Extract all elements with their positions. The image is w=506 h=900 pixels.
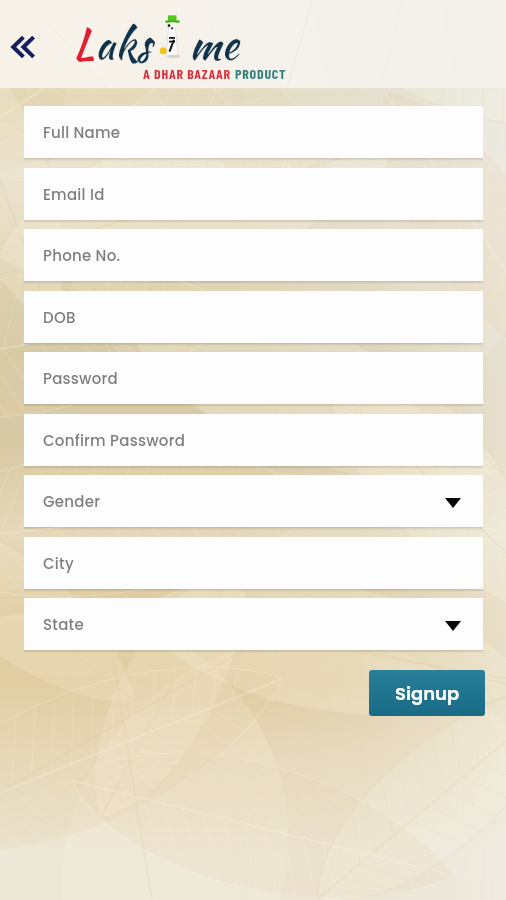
staticText: State (43, 614, 84, 635)
button[interactable]: Phone No. (24, 229, 483, 281)
staticText: me (189, 13, 239, 74)
staticText: Signup (395, 681, 460, 706)
staticText: City (43, 553, 74, 574)
staticText: Password (43, 368, 118, 389)
button[interactable]: City (24, 537, 483, 589)
button[interactable]: State (24, 598, 483, 650)
staticText: A DHAR BAZAAR (143, 65, 235, 82)
staticText: Phone No. (43, 245, 121, 266)
button[interactable]: Email Id (24, 168, 483, 220)
staticText: Confirm Password (43, 430, 186, 451)
button[interactable]: Signup (369, 670, 485, 716)
button[interactable]: Confirm Password (24, 414, 483, 466)
staticText: L (73, 13, 95, 74)
staticText: PRODUCT (235, 65, 287, 82)
button[interactable]: Gender (24, 475, 483, 527)
button[interactable]: Back (0, 24, 44, 70)
staticText: DOB (43, 307, 76, 328)
staticText: Full Name (43, 122, 121, 143)
button[interactable]: DOB (24, 291, 483, 343)
staticText: Gender (43, 491, 101, 512)
staticText: Email Id (43, 184, 105, 205)
button[interactable]: Full Name (24, 106, 483, 158)
staticText: aks (95, 13, 151, 74)
button[interactable]: Password (24, 352, 483, 404)
